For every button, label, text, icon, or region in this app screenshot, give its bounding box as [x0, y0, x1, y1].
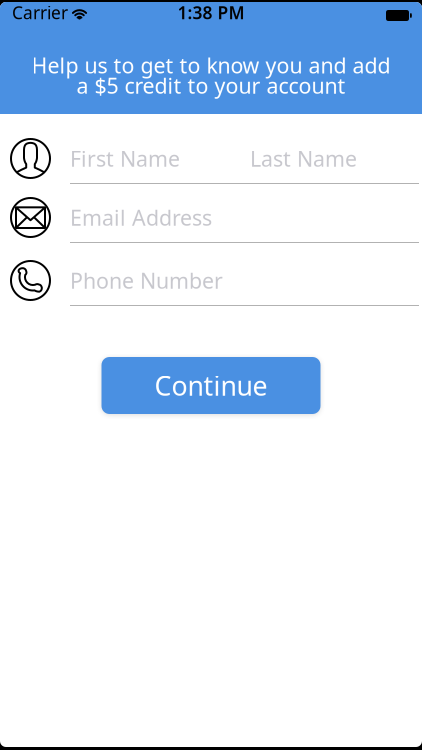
staticText: Phone Number — [70, 266, 223, 295]
staticText: Carrier — [12, 1, 68, 24]
staticText: Last Name — [250, 144, 357, 173]
button[interactable]: Continue — [101, 357, 320, 414]
staticText: First Name — [70, 144, 180, 173]
staticText: Continue — [154, 368, 267, 403]
staticText: Email Address — [70, 203, 212, 232]
button[interactable]: Phone Number — [0, 243, 422, 306]
button[interactable]: Email Address — [0, 184, 422, 243]
button[interactable]: First Name / Last Name — [0, 114, 422, 184]
staticText: a $5 credit to your account — [76, 71, 345, 100]
staticText: Help us to get to know you and add — [31, 51, 390, 79]
staticText: 1:38 PM — [177, 1, 244, 24]
